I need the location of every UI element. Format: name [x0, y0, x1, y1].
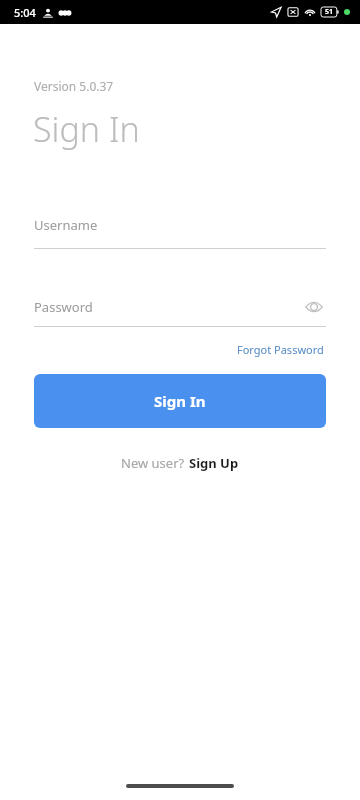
staticText: New user?	[121, 454, 188, 472]
button[interactable]: Show password	[302, 295, 326, 319]
staticText: Sign In	[33, 106, 140, 152]
staticText: Version 5.0.37	[34, 78, 114, 94]
staticText: 51	[325, 7, 334, 17]
staticText: Forgot Password	[237, 342, 324, 357]
button[interactable]: Sign In	[34, 374, 326, 428]
button[interactable]: Sign Up	[188, 452, 240, 474]
staticText: Username	[34, 216, 326, 234]
staticText: Sign Up	[189, 454, 239, 472]
staticText: Sign In	[154, 391, 206, 411]
staticText: 5:04	[14, 5, 36, 20]
staticText: Password	[34, 298, 302, 316]
button[interactable]: Forgot Password	[235, 339, 326, 360]
